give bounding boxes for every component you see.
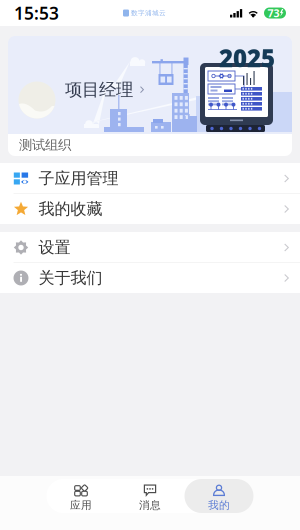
button[interactable]: 关于我们 — [0, 263, 300, 293]
staticText: 73 — [267, 6, 279, 20]
staticText: 项目经理 — [65, 79, 133, 100]
staticText: 我的收藏 — [38, 199, 102, 219]
staticText: 测试组织 — [19, 137, 71, 153]
button[interactable]: 应用 — [46, 479, 115, 513]
staticText: 应用 — [70, 499, 92, 512]
staticText: 设置 — [38, 238, 70, 257]
button[interactable]: 设置 — [0, 232, 300, 263]
staticText: 2025 — [219, 42, 275, 74]
button[interactable]: 我的 — [184, 479, 253, 513]
button[interactable]: 项目经理 — [8, 36, 292, 156]
button[interactable]: 子应用管理 — [0, 163, 300, 194]
staticText: 我的 — [208, 499, 230, 512]
button[interactable]: 消息 — [115, 479, 184, 513]
staticText: 关于我们 — [38, 268, 102, 288]
button[interactable]: 我的收藏 — [0, 194, 300, 224]
staticText: 子应用管理 — [38, 169, 118, 188]
staticText: 15:53 — [14, 1, 59, 24]
staticText: 消息 — [139, 499, 161, 512]
staticText: 数字浦城云 — [131, 9, 166, 17]
